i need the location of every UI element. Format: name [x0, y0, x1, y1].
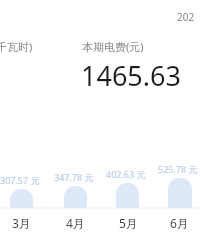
button[interactable] [64, 186, 87, 208]
button[interactable] [10, 189, 33, 208]
staticText: 5月 [119, 215, 138, 231]
staticText: 202 [177, 10, 195, 24]
staticText: 3月 [12, 215, 31, 231]
staticText: 6月 [170, 215, 189, 231]
staticText: 525.78 元 [158, 163, 198, 175]
staticText: 本期电费(元) [82, 39, 144, 54]
button[interactable] [168, 178, 192, 208]
staticText: 307.57 元 [0, 174, 40, 186]
staticText: 1465.63 [81, 57, 181, 94]
staticText: 347.78 元 [54, 171, 94, 183]
staticText: 千瓦时) [0, 39, 33, 54]
staticText: 4月 [66, 215, 85, 231]
button[interactable] [116, 183, 139, 208]
staticText: 402.63 元 [106, 168, 146, 180]
